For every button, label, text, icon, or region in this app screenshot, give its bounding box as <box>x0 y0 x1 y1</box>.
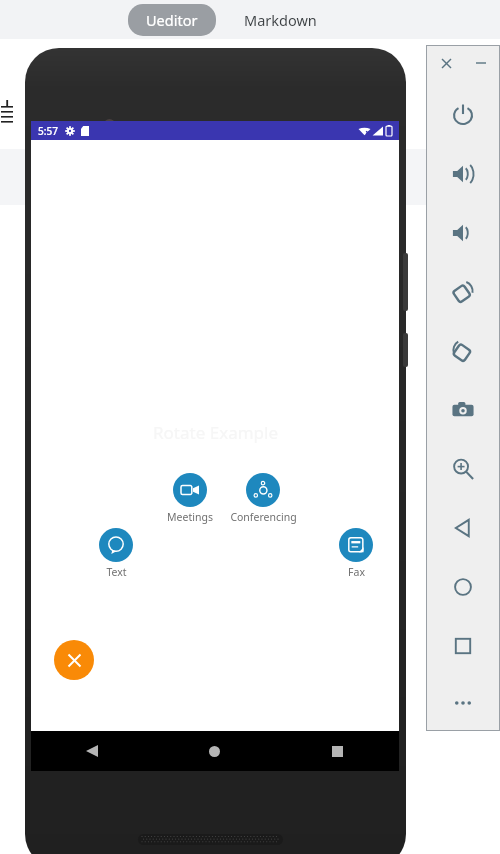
button[interactable]: Rotate left <box>427 262 499 321</box>
button[interactable]: Fax <box>313 528 399 579</box>
button[interactable]: Conferencing <box>220 473 306 524</box>
button[interactable]: Minimize <box>474 55 488 71</box>
button[interactable]: Ueditor <box>128 4 216 36</box>
button[interactable]: Overview <box>427 616 499 675</box>
button[interactable]: Zoom <box>427 439 499 498</box>
button[interactable]: Close <box>438 55 454 71</box>
staticText: Markdown <box>244 10 317 30</box>
button[interactable]: Meetings <box>147 473 233 524</box>
other: Conferencing <box>246 473 280 507</box>
staticText: Conferencing <box>230 510 297 524</box>
button[interactable]: Home <box>427 557 499 616</box>
other: Meetings <box>173 473 207 507</box>
button[interactable]: Volume down <box>427 203 499 262</box>
button[interactable]: Recents <box>276 731 399 771</box>
button[interactable]: Home <box>153 731 276 771</box>
button[interactable]: Take screenshot <box>427 380 499 439</box>
button[interactable]: Back <box>427 498 499 557</box>
staticText: Ueditor <box>146 10 198 30</box>
other: Fax <box>339 528 373 562</box>
button[interactable]: Back <box>31 731 153 771</box>
button[interactable]: Power <box>427 85 499 144</box>
staticText: Meetings <box>167 510 213 524</box>
other: Text <box>99 528 133 562</box>
staticText: Text <box>106 565 127 579</box>
button[interactable]: Text <box>73 528 159 579</box>
button[interactable]: Volume up <box>427 144 499 203</box>
staticText: Rotate Example <box>153 421 278 444</box>
button[interactable]: Close menu <box>54 640 94 680</box>
staticText: 5:57 <box>38 124 58 138</box>
staticText: Fax <box>348 565 365 579</box>
button[interactable]: Rotate right <box>427 321 499 380</box>
button[interactable]: Markdown <box>238 4 323 36</box>
button[interactable]: More <box>427 675 499 731</box>
